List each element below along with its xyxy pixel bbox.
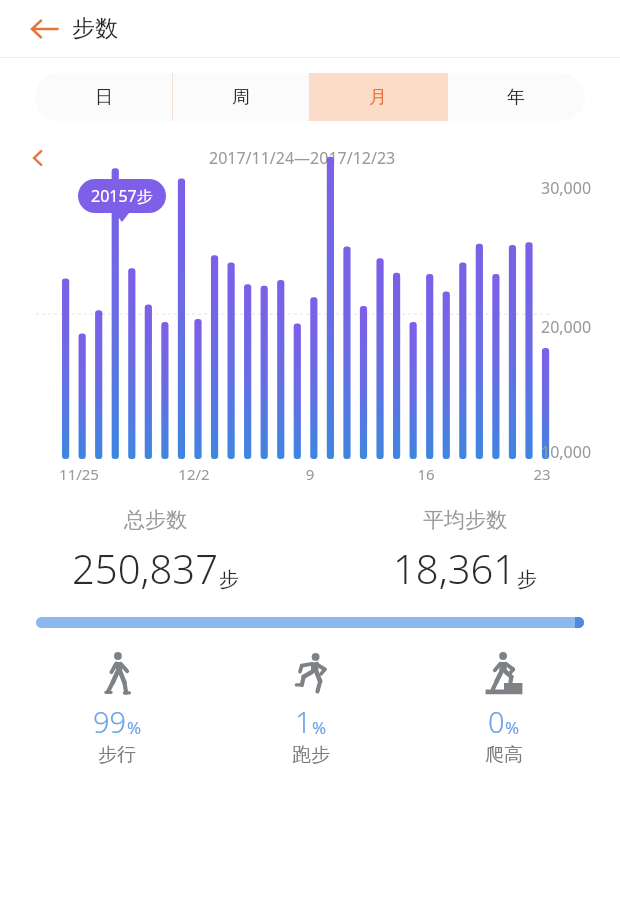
staticText: % — [505, 716, 520, 739]
button[interactable]: Previous period — [22, 142, 54, 174]
button[interactable]: 年 — [447, 73, 585, 121]
button[interactable]: Back — [24, 9, 64, 49]
staticText: 16 — [400, 464, 452, 484]
staticText: 9 — [284, 464, 336, 484]
staticText: % — [127, 716, 142, 739]
staticText: 总步数 — [124, 507, 187, 533]
staticText: 0 — [488, 702, 505, 741]
staticText: 11/25 — [53, 464, 105, 484]
staticText: 12/2 — [168, 464, 220, 484]
staticText: 月 — [369, 86, 387, 109]
staticText: 步数 — [72, 14, 118, 43]
staticText: 20157步 — [91, 185, 153, 207]
staticText: 爬高 — [485, 743, 523, 767]
staticText: 99 — [93, 702, 127, 741]
staticText: 步行 — [98, 743, 136, 767]
staticText: 20,000 — [541, 316, 592, 338]
staticText: 30,000 — [541, 177, 592, 199]
staticText: 2017/11/24—2017/12/23 — [209, 147, 396, 169]
staticText: 10,000 — [541, 441, 592, 463]
staticText: % — [312, 716, 327, 739]
staticText: 跑步 — [292, 743, 330, 767]
button[interactable]: 平均步数 — [310, 507, 620, 595]
staticText: 步 — [219, 567, 239, 592]
staticText: 周 — [232, 86, 250, 109]
button[interactable]: 日 — [35, 73, 172, 121]
button[interactable]: Walking — [20, 650, 214, 767]
button[interactable]: 总步数 — [0, 507, 310, 595]
staticText: 平均步数 — [423, 507, 507, 533]
staticText: 步 — [517, 567, 537, 592]
staticText: 年 — [507, 86, 525, 109]
button[interactable]: 月 — [309, 73, 447, 121]
button[interactable]: 周 — [172, 73, 309, 121]
button[interactable]: Running — [214, 650, 407, 767]
staticText: 日 — [95, 86, 113, 109]
button[interactable]: Climbing — [407, 650, 600, 767]
staticText: 23 — [516, 464, 568, 484]
staticText: 18,361 — [393, 541, 517, 595]
staticText: 250,837 — [72, 541, 219, 595]
staticText: 1 — [295, 702, 312, 741]
